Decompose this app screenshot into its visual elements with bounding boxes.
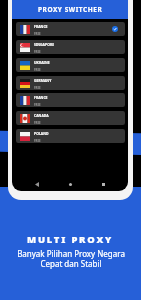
staticText: FREE bbox=[34, 50, 41, 54]
button[interactable]: Recents bbox=[99, 180, 107, 188]
staticText: FRANCE bbox=[34, 95, 48, 100]
staticText: FREE bbox=[34, 121, 41, 125]
button[interactable]: CANADA bbox=[16, 111, 125, 125]
staticText: Banyak Pilihan Proxy Negara Cepat dan St… bbox=[17, 248, 125, 269]
button[interactable]: GERMANY bbox=[16, 76, 125, 90]
staticText: FREE bbox=[34, 68, 41, 72]
button[interactable]: FRANCE bbox=[16, 93, 125, 107]
staticText: POLAND bbox=[34, 131, 49, 136]
staticText: FREE bbox=[34, 86, 41, 90]
staticText: MULTI PROXY bbox=[27, 233, 114, 246]
staticText: CANADA bbox=[34, 113, 49, 118]
button[interactable]: SINGAPORE bbox=[16, 40, 125, 54]
button[interactable]: PROXY SWITCHER bbox=[12, 0, 128, 19]
button[interactable]: Back bbox=[33, 180, 41, 188]
button[interactable]: Home bbox=[66, 180, 74, 188]
staticText: FREE bbox=[34, 32, 41, 36]
staticText: PROXY SWITCHER bbox=[38, 5, 103, 14]
button[interactable]: FRANCE bbox=[16, 22, 125, 36]
staticText: FRANCE bbox=[34, 24, 48, 29]
staticText: FREE bbox=[34, 139, 41, 143]
staticText: UKRAINE bbox=[34, 60, 50, 65]
staticText: GERMANY bbox=[34, 78, 52, 83]
staticText: SINGAPORE bbox=[34, 42, 55, 47]
button[interactable]: POLAND bbox=[16, 129, 125, 143]
button[interactable]: UKRAINE bbox=[16, 58, 125, 72]
staticText: FREE bbox=[34, 103, 41, 107]
